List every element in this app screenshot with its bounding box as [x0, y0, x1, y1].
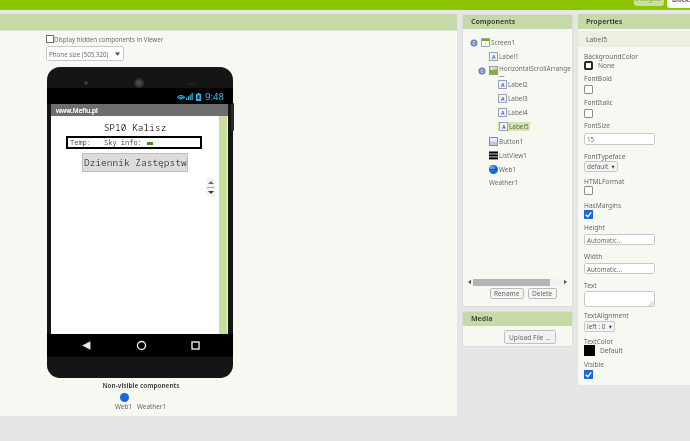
staticText: Screen1: [491, 38, 515, 47]
staticText: None: [598, 61, 615, 70]
other: Back: [81, 340, 92, 351]
staticText: Rename: [494, 289, 520, 298]
button[interactable]: Checked: [584, 370, 593, 379]
staticText: Weather1: [137, 402, 167, 411]
button[interactable]: Display hidden components in Viewer: [46, 35, 164, 43]
staticText: Display hidden components in Viewer: [54, 35, 164, 43]
button[interactable]: Web1: [462, 163, 573, 176]
staticText: Height: [584, 223, 605, 232]
staticText: A: [502, 123, 506, 130]
button[interactable]: Unchecked: [584, 186, 593, 195]
button[interactable]: Dziennik Zastępstw: [82, 153, 188, 172]
staticText: Sky info:: [104, 138, 142, 148]
button[interactable]: Weather1: [462, 176, 573, 189]
staticText: Label5: [586, 35, 608, 44]
button[interactable]: Phone size (505,320): [46, 46, 124, 61]
button[interactable]: Unchecked: [584, 85, 593, 94]
button[interactable]: HorizontalScrollArrangem: [462, 64, 573, 77]
staticText: HasMargins: [584, 201, 622, 210]
button[interactable]: A: [462, 120, 573, 133]
button[interactable]: Rename: [490, 288, 524, 299]
staticText: www.Mefiu.pl: [56, 106, 98, 115]
staticText: A: [492, 53, 496, 60]
button[interactable]: A: [462, 78, 573, 91]
button[interactable]: Automatic...: [584, 234, 655, 245]
button[interactable]: Delete: [528, 288, 557, 299]
staticText: Label3: [508, 94, 528, 103]
staticText: A: [501, 81, 505, 88]
button[interactable]: left : 0 ▾: [584, 321, 615, 332]
staticText: TextColor: [584, 337, 614, 346]
staticText: Label4: [508, 108, 528, 117]
staticText: Dziennik Zastępstw: [84, 156, 187, 169]
staticText: HTMLFormat: [584, 177, 625, 186]
staticText: ListView1: [499, 151, 528, 160]
staticText: Label1: [499, 52, 519, 61]
staticText: SP10 Kalisz: [51, 121, 219, 134]
staticText: Weather1: [489, 178, 519, 187]
staticText: FontTypeface: [584, 152, 626, 161]
button[interactable]: Default: [584, 345, 623, 356]
button[interactable]: Checked: [584, 210, 593, 219]
staticText: Web1: [499, 165, 517, 174]
button[interactable]: default ▾: [584, 161, 618, 172]
button[interactable]: Blocks: [667, 0, 690, 8]
staticText: Temp:: [70, 138, 91, 148]
button[interactable]: Automatic...: [584, 263, 655, 274]
staticText: Label5: [509, 122, 529, 131]
staticText: Web1: [115, 402, 133, 411]
staticText: Properties: [586, 17, 623, 27]
staticText: Media: [471, 314, 493, 324]
staticText: Phone size (505,320): [49, 50, 109, 58]
staticText: Upload File ...: [509, 333, 551, 342]
staticText: FontSize: [584, 121, 611, 130]
staticText: Default: [600, 346, 623, 355]
staticText: Designer: [635, 0, 663, 2]
staticText: FontItalic: [584, 98, 613, 107]
other: Home: [136, 340, 147, 351]
other: Display hidden components in Viewer: [46, 35, 54, 43]
staticText: Width: [584, 252, 603, 261]
staticText: Label2: [508, 80, 528, 89]
staticText: Visible: [584, 360, 604, 369]
staticText: A: [501, 109, 505, 116]
button[interactable]: ListView1: [462, 149, 573, 162]
button[interactable]: Designer: [634, 0, 664, 6]
staticText: 15: [587, 135, 595, 143]
button[interactable]: Scroll: [206, 178, 215, 197]
button[interactable]: A: [462, 50, 573, 63]
button[interactable]: None: [584, 61, 615, 70]
staticText: HorizontalScrollArrangem: [499, 64, 573, 77]
staticText: BackgroundColor: [584, 52, 639, 61]
staticText: Button1: [499, 137, 524, 146]
staticText: TextAlignment: [584, 311, 629, 320]
staticText: left : 0 ▾: [587, 322, 612, 331]
button[interactable]: [584, 291, 655, 307]
staticText: Components: [471, 17, 516, 27]
button[interactable]: Screen1: [462, 36, 573, 49]
staticText: Delete: [532, 289, 553, 298]
staticText: 9:48: [205, 90, 224, 103]
staticText: Text: [584, 281, 597, 290]
button[interactable]: A: [462, 106, 573, 119]
button[interactable]: 15: [584, 133, 655, 145]
staticText: FontBold: [584, 74, 612, 83]
button[interactable]: Upload File ...: [504, 330, 556, 344]
button[interactable]: A: [462, 92, 573, 105]
button[interactable]: Unchecked: [584, 109, 593, 118]
staticText: A: [501, 95, 505, 102]
other: Recent apps: [190, 340, 201, 351]
staticText: Automatic...: [587, 265, 622, 273]
staticText: Automatic...: [587, 236, 622, 244]
staticText: default ▾: [587, 162, 615, 171]
button[interactable]: Button1: [462, 135, 573, 148]
staticText: Blocks: [672, 0, 690, 3]
staticText: Non-visible components: [48, 381, 234, 390]
